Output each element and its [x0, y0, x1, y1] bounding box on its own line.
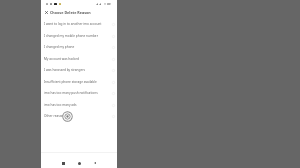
button[interactable]: I was harassed by strangers: [41, 64, 117, 76]
button[interactable]: imo has too many push notifications: [41, 87, 117, 99]
staticText: I changed my mobile phone number: [44, 34, 112, 38]
button[interactable]: I changed my phone: [41, 41, 117, 53]
button[interactable]: I want to log in to another imo account: [41, 18, 117, 30]
staticText: imo has too many ads: [44, 103, 112, 107]
button[interactable]: Home: [75, 159, 83, 167]
staticText: Insufficient phone storage available: [44, 80, 112, 84]
button[interactable]: Insufficient phone storage available: [41, 76, 117, 88]
staticText: Choose Delete Reason: [50, 10, 91, 15]
button[interactable]: imo has too many ads: [41, 99, 117, 111]
button[interactable]: Back: [91, 159, 99, 167]
staticText: I changed my phone: [44, 45, 112, 49]
staticText: imo has too many push notifications: [44, 91, 112, 95]
staticText: I was harassed by strangers: [44, 68, 112, 72]
staticText: My account was hacked: [44, 57, 112, 61]
button[interactable]: My account was hacked: [41, 53, 117, 65]
staticText: Other reason: [44, 114, 112, 118]
button[interactable]: Recents: [59, 159, 67, 167]
button[interactable]: I changed my mobile phone number: [41, 30, 117, 42]
button[interactable]: Close: [44, 10, 49, 15]
button[interactable]: Other reason: [41, 110, 117, 122]
staticText: I want to log in to another imo account: [44, 22, 112, 26]
